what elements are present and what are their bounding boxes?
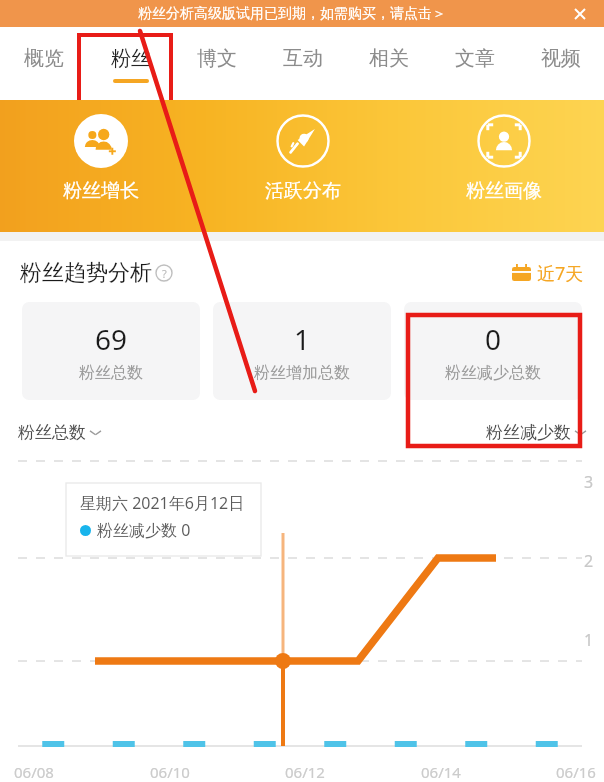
staticText: 活跃分布	[265, 179, 341, 203]
staticText: 0	[485, 320, 502, 358]
staticText: 2	[584, 550, 594, 572]
button[interactable]: 粉丝减少数	[486, 422, 586, 443]
staticText: 69	[95, 320, 128, 358]
button[interactable]: 相关	[346, 27, 432, 100]
staticText: 粉丝增长	[63, 179, 139, 203]
staticText: 1	[294, 320, 311, 358]
button[interactable]: Help	[155, 264, 173, 282]
button[interactable]: 69	[22, 302, 200, 400]
staticText: 博文	[197, 46, 237, 71]
button[interactable]: 活跃分布	[202, 100, 403, 232]
staticText: ?	[162, 266, 167, 281]
button[interactable]: 视频	[518, 27, 604, 100]
button[interactable]: 博文	[174, 27, 260, 100]
staticText: 3	[584, 471, 594, 493]
button[interactable]: Close	[570, 4, 590, 24]
staticText: 粉丝增加总数	[254, 363, 350, 383]
button[interactable]: 互动	[260, 27, 346, 100]
button[interactable]: 概览	[0, 27, 87, 100]
staticText: 视频	[541, 46, 581, 71]
staticText: 粉丝总数	[79, 363, 143, 383]
staticText: 06/16	[556, 762, 596, 782]
staticText: 文章	[455, 46, 495, 71]
staticText: 粉丝减少总数	[445, 363, 541, 383]
button[interactable]: 0	[404, 302, 582, 400]
button[interactable]: 粉丝	[87, 27, 174, 100]
button[interactable]: 粉丝增长	[0, 100, 202, 232]
staticText: 粉丝分析高级版试用已到期，如需购买，请点击＞	[138, 5, 446, 23]
staticText: 06/08	[14, 762, 54, 782]
staticText: 粉丝减少数	[486, 422, 571, 443]
button[interactable]: 文章	[432, 27, 518, 100]
staticText: 粉丝总数	[18, 422, 86, 443]
staticText: 星期六 2021年6月12日	[80, 492, 245, 514]
button[interactable]: 粉丝总数	[18, 422, 101, 443]
button[interactable]: 粉丝分析高级版试用已到期，如需购买，请点击＞	[0, 0, 604, 27]
staticText: 粉丝	[111, 46, 151, 71]
staticText: 06/10	[150, 762, 190, 782]
button[interactable]: 粉丝画像	[403, 100, 604, 232]
staticText: 概览	[24, 46, 64, 71]
staticText: 近7天	[537, 261, 584, 286]
staticText: 1	[584, 629, 594, 651]
button[interactable]: 1	[213, 302, 391, 400]
button[interactable]: 近7天	[512, 261, 584, 286]
staticText: 互动	[283, 46, 323, 71]
staticText: 粉丝趋势分析	[20, 259, 152, 287]
staticText: 06/14	[421, 762, 461, 782]
staticText: 相关	[369, 46, 409, 71]
staticText: 粉丝画像	[466, 179, 542, 203]
staticText: 06/12	[285, 762, 325, 782]
staticText: 粉丝减少数 0	[97, 519, 191, 541]
